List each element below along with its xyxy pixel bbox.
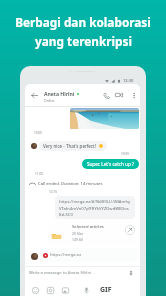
- button[interactable]: https://mega.nz: [40, 248, 138, 262]
- staticText: Berbagi dan kolaborasi: [15, 14, 151, 30]
- button[interactable]: More options: [128, 89, 140, 101]
- staticText: https://mega.nz/#!9kBf0LL!/iMAmhyVTafn4m…: [59, 199, 131, 216]
- staticText: GIF: [100, 285, 112, 295]
- button[interactable]: Download: [123, 223, 136, 236]
- staticText: Selected articles: [72, 224, 104, 230]
- button[interactable]: Very nice - That's perfect!: [39, 141, 107, 151]
- staticText: Write a message to Aneta Hlrlni: [29, 270, 92, 276]
- button[interactable]: GIF: [99, 283, 113, 296]
- staticText: 11:05: [35, 172, 44, 176]
- button[interactable]: Photo: [70, 108, 139, 129]
- staticText: Call ended. Duration: 14 minutes: [38, 181, 103, 187]
- button[interactable]: https://mega.nz/#!9kBf0LL!/iMAmhyVTafn4m…: [55, 196, 135, 219]
- button[interactable]: Video call: [113, 89, 125, 101]
- staticText: Online: [44, 98, 55, 103]
- staticText: 149 kB: [72, 237, 83, 242]
- button[interactable]: Emoji: [29, 284, 41, 296]
- staticText: Aneta Hlrlni: [44, 90, 75, 97]
- staticText: 12:30: [123, 78, 134, 83]
- button[interactable]: Call: [100, 89, 112, 101]
- staticText: 10:05: [34, 131, 43, 135]
- button[interactable]: Gallery: [59, 284, 71, 296]
- button[interactable]: Voice message: [80, 284, 92, 296]
- button[interactable]: Back: [26, 87, 42, 103]
- staticText: https://mega.nz: [50, 252, 82, 258]
- button[interactable]: Super. Let's catch up ?: [82, 159, 139, 169]
- staticText: Super. Let's catch up ?: [87, 161, 134, 167]
- staticText: Very nice - That's perfect!: [43, 143, 96, 149]
- staticText: 10:55: [121, 152, 130, 156]
- button[interactable]: Camera: [44, 284, 56, 296]
- button[interactable]: Write a message to Aneta Hlrlni: [25, 267, 140, 279]
- button[interactable]: [48, 220, 139, 246]
- staticText: 12:15: [49, 190, 58, 194]
- staticText: 20 files: [72, 231, 84, 236]
- staticText: yang terenkripsi: [35, 33, 132, 49]
